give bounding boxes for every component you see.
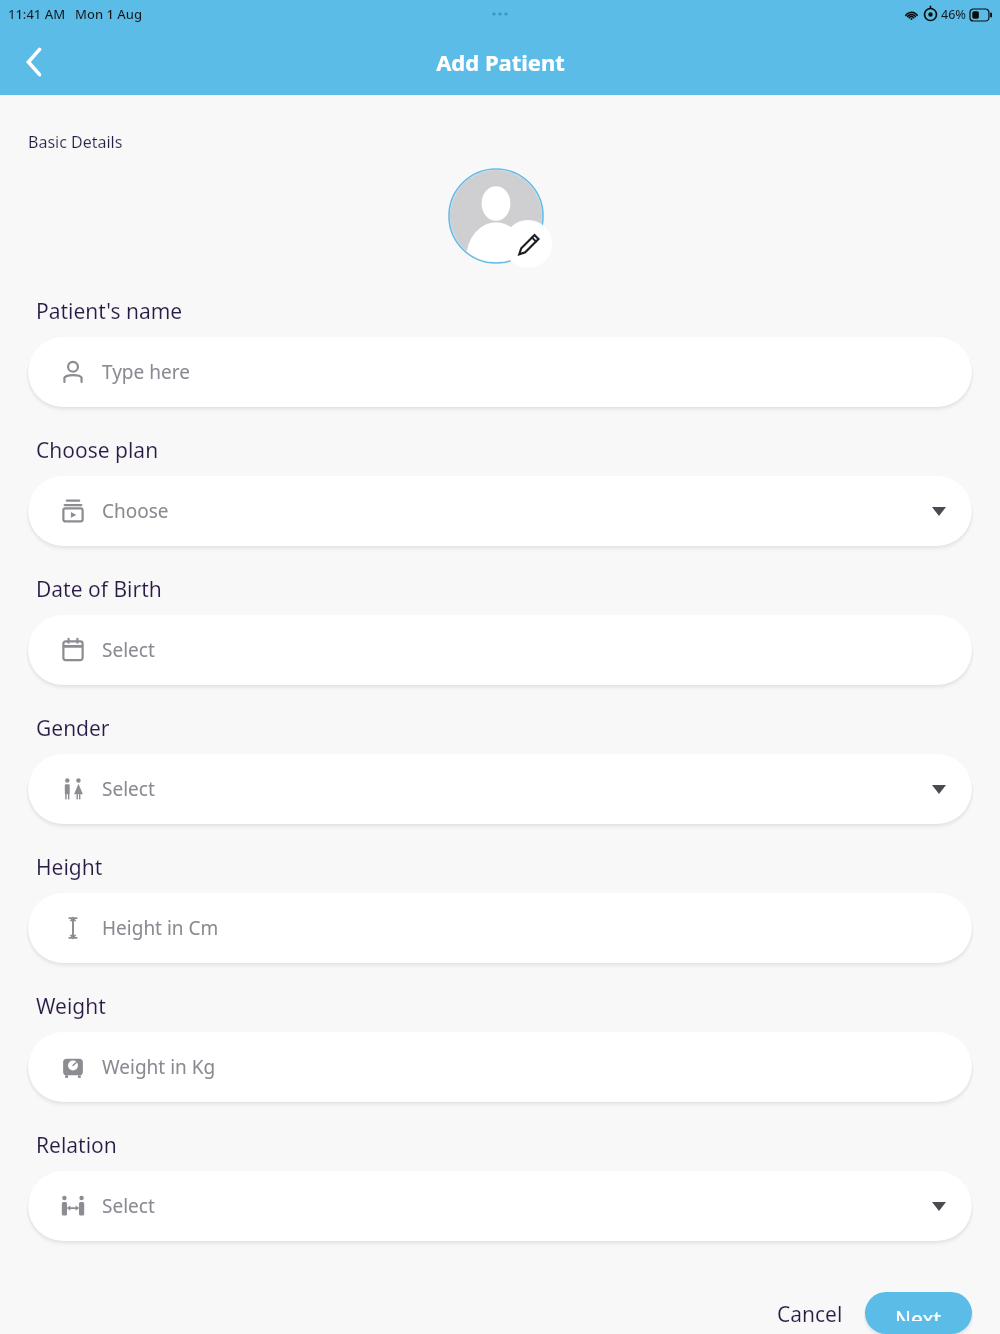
button[interactable]: Height in Cm: [28, 893, 972, 963]
button[interactable]: Back: [12, 40, 56, 84]
staticText: Weight: [36, 992, 106, 1021]
staticText: Next: [895, 1305, 942, 1321]
button[interactable]: Cancel: [767, 1292, 853, 1334]
staticText: Patient's name: [36, 297, 183, 326]
staticText: Type here: [102, 359, 190, 385]
staticText: Height in Cm: [102, 915, 219, 941]
button[interactable]: Select: [28, 1171, 972, 1241]
staticText: Choose: [102, 498, 169, 524]
staticText: Select: [102, 776, 155, 802]
staticText: Select: [102, 1193, 155, 1219]
button[interactable]: Select: [28, 615, 972, 685]
staticText: 11:41 AM: [8, 5, 66, 23]
staticText: Gender: [36, 714, 110, 743]
button[interactable]: Choose: [28, 476, 972, 546]
button[interactable]: Next: [865, 1292, 972, 1334]
staticText: Cancel: [777, 1300, 843, 1326]
staticText: Height: [36, 853, 103, 882]
staticText: 46%: [941, 6, 966, 23]
button[interactable]: Patient photo: [448, 168, 544, 264]
staticText: Mon 1 Aug: [75, 5, 142, 23]
staticText: Add Patient: [436, 47, 565, 77]
staticText: Select: [102, 637, 155, 663]
staticText: Choose plan: [36, 436, 159, 465]
staticText: Basic Details: [28, 131, 123, 153]
staticText: Date of Birth: [36, 575, 162, 604]
button[interactable]: Type here: [28, 337, 972, 407]
button[interactable]: Edit photo: [504, 220, 552, 268]
staticText: Relation: [36, 1131, 117, 1160]
staticText: Weight in Kg: [102, 1054, 216, 1080]
button[interactable]: Weight in Kg: [28, 1032, 972, 1102]
button[interactable]: Select: [28, 754, 972, 824]
